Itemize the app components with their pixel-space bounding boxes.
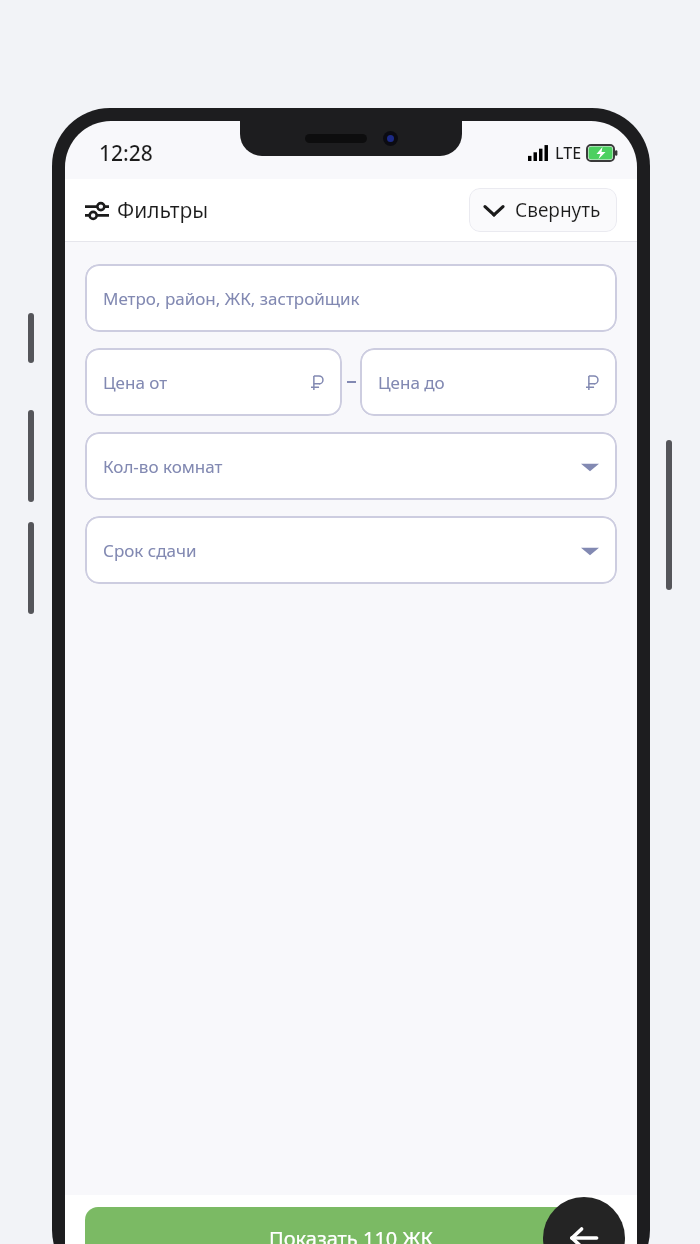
staticText: Цена от	[103, 371, 168, 394]
button[interactable]: Показать 110 ЖК	[85, 1207, 617, 1244]
staticText: Показать 110 ЖК	[269, 1225, 434, 1244]
staticText: LTE	[555, 142, 582, 164]
staticText: Срок сдачи	[103, 539, 197, 562]
staticText: Цена до	[378, 371, 445, 394]
staticText: Свернуть	[515, 197, 601, 223]
button[interactable]: Back	[543, 1197, 625, 1244]
staticText: Метро, район, ЖК, застройщик	[103, 287, 360, 310]
staticText: 12:28	[99, 139, 153, 168]
staticText: Фильтры	[117, 196, 209, 225]
button[interactable]: Кол-во комнат	[85, 432, 617, 500]
button[interactable]: Цена от	[85, 348, 342, 416]
button[interactable]: Цена до	[360, 348, 617, 416]
button[interactable]: Свернуть	[469, 188, 617, 232]
button[interactable]: Метро, район, ЖК, застройщик	[85, 264, 617, 332]
staticText: Кол-во комнат	[103, 455, 223, 478]
button[interactable]: Срок сдачи	[85, 516, 617, 584]
button[interactable]: Фильтры	[85, 196, 209, 225]
